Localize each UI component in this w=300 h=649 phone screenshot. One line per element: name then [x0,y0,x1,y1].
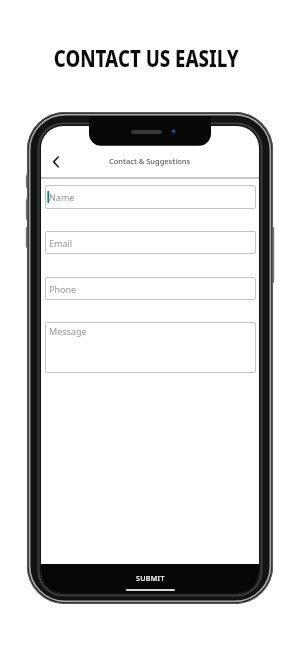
staticText: Message [49,325,87,337]
staticText: Phone [49,283,77,295]
staticText: SUBMIT [136,574,165,584]
staticText: Contact & Suggestions [109,156,191,166]
staticText: Name [49,191,75,203]
staticText: Email [49,237,73,249]
button[interactable] [46,152,66,172]
button[interactable]: Message [45,322,256,373]
button[interactable]: SUBMIT [41,564,259,593]
staticText: CONTACT US EASILY [54,42,239,72]
button[interactable]: Name [45,185,256,209]
button[interactable]: Phone [45,277,256,300]
button[interactable]: Email [45,231,256,254]
